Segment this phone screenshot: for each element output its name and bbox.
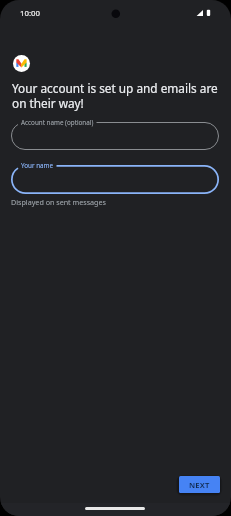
other: Signal strength xyxy=(196,10,203,16)
button[interactable]: Account name (optional) xyxy=(11,122,219,150)
button[interactable]: Home xyxy=(85,507,145,510)
other: Battery xyxy=(206,9,211,16)
staticText: NEXT xyxy=(189,480,210,490)
staticText: Account name (optional) xyxy=(21,118,94,127)
staticText: Displayed on sent messages xyxy=(11,197,106,207)
button[interactable]: Your name xyxy=(11,165,219,194)
staticText: Your account is set up and emails are on… xyxy=(12,80,231,112)
button[interactable]: NEXT xyxy=(179,476,220,493)
staticText: Your name xyxy=(21,161,54,170)
staticText: 10:00 xyxy=(20,8,40,19)
